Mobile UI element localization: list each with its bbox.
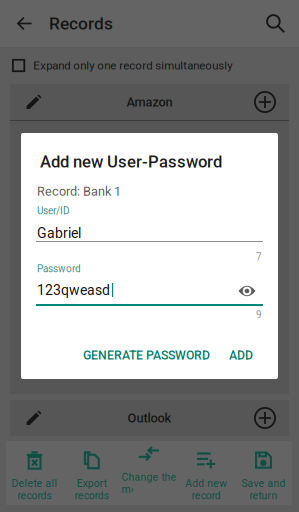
- button[interactable]: ADD: [218, 341, 264, 369]
- staticText: ADD: [229, 348, 253, 362]
- button[interactable]: Show password: [238, 284, 256, 298]
- staticText: Record: Bank 1: [37, 184, 121, 199]
- staticText: Add new User-Password: [40, 152, 222, 171]
- staticText: Save and: [241, 477, 285, 489]
- staticText: records: [18, 489, 52, 502]
- staticText: User/ID: [37, 205, 70, 217]
- staticText: Outlook: [127, 410, 171, 425]
- button[interactable]: Change the m›: [120, 441, 178, 505]
- button[interactable]: Export: [63, 441, 120, 505]
- staticText: Amazon: [126, 94, 172, 109]
- staticText: records: [75, 489, 109, 502]
- button[interactable]: Back: [0, 0, 49, 47]
- staticText: 7: [256, 251, 262, 263]
- staticText: record: [192, 489, 221, 502]
- staticText: 123qweasd: [37, 282, 110, 298]
- staticText: return: [249, 489, 277, 502]
- button[interactable]: GENERATE PASSWORD: [75, 341, 218, 369]
- staticText: GENERATE PASSWORD: [83, 348, 210, 362]
- button[interactable]: Save and: [235, 441, 292, 505]
- staticText: Records: [49, 13, 113, 34]
- staticText: Change the m›: [121, 471, 176, 496]
- button[interactable]: Search: [252, 0, 299, 47]
- button[interactable]: Outlook: [10, 400, 289, 436]
- staticText: Export: [77, 477, 107, 489]
- staticText: Expand only one record simultaneously: [33, 59, 232, 72]
- staticText: Delete all: [12, 477, 58, 489]
- button[interactable]: Add new: [178, 441, 235, 505]
- staticText: Add new: [185, 477, 227, 489]
- staticText: Gabriel: [37, 225, 81, 241]
- staticText: 9: [256, 309, 262, 321]
- button[interactable]: Expand only one record simultaneously: [0, 47, 299, 84]
- staticText: Password: [37, 263, 81, 275]
- button[interactable]: Delete all: [6, 441, 63, 505]
- button[interactable]: Amazon: [10, 84, 289, 120]
